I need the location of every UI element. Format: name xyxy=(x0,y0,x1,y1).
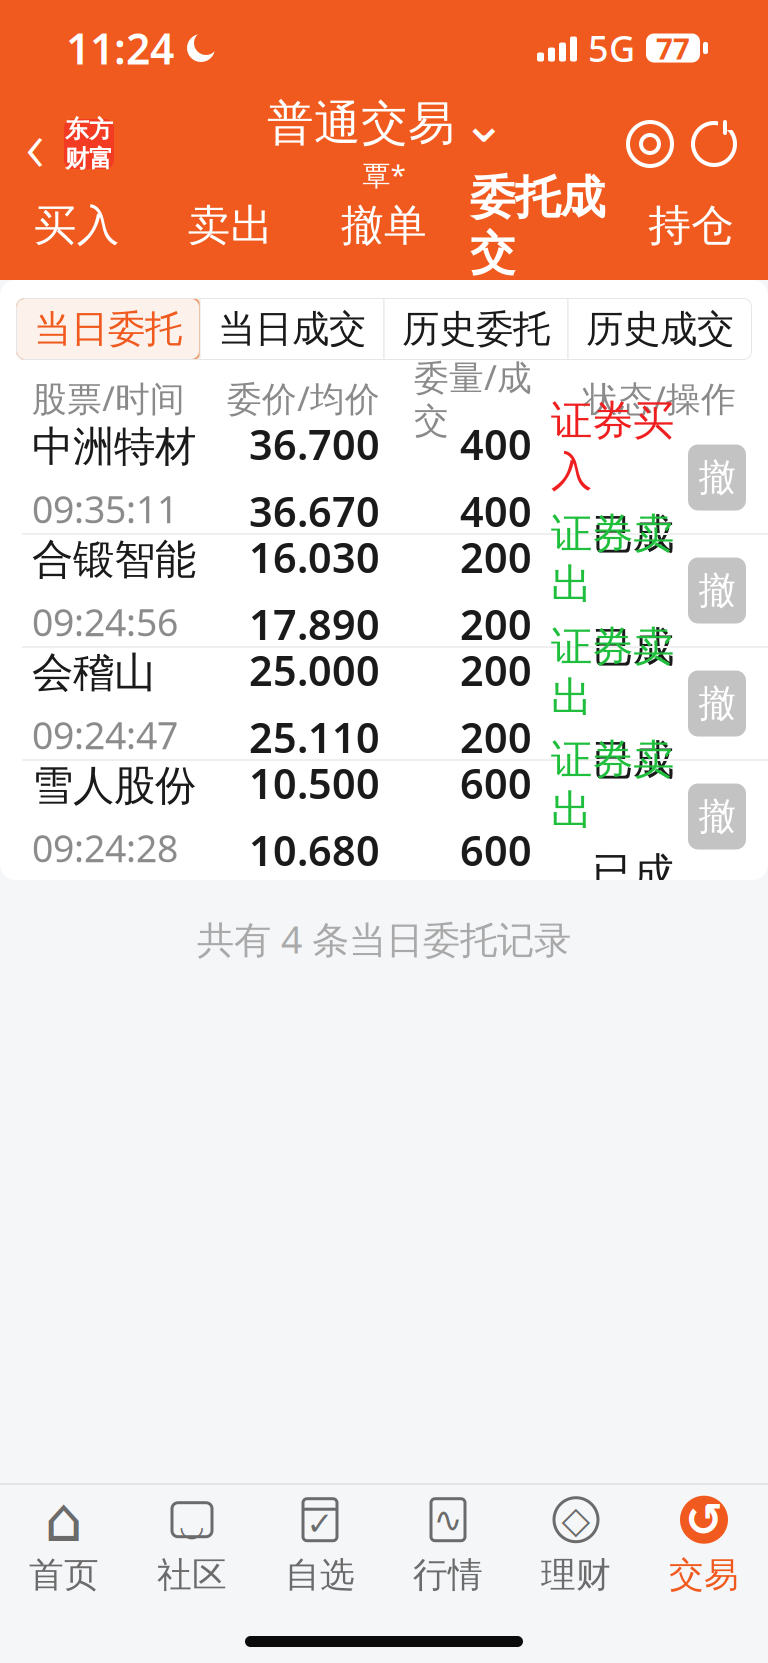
staticText: 卖出 xyxy=(187,199,273,252)
staticText: 200 xyxy=(460,530,532,584)
staticText: 600 xyxy=(460,822,532,877)
staticText: 历史成交 xyxy=(586,306,734,352)
staticText: 撤单 xyxy=(341,199,427,252)
staticText: 买入 xyxy=(34,199,120,252)
staticText: 中洲特材 xyxy=(32,421,196,472)
staticText: 200 xyxy=(460,596,532,651)
staticText: 证券卖出 xyxy=(551,734,674,836)
button[interactable]: 设置 xyxy=(618,112,682,176)
staticText: 10.500 xyxy=(249,756,380,810)
button[interactable]: ∿ xyxy=(384,1485,512,1607)
staticText: 普通交易 xyxy=(267,95,455,152)
staticText: 17.890 xyxy=(249,596,380,651)
staticText: 自选 xyxy=(285,1554,355,1596)
button[interactable]: 会稽山 xyxy=(0,648,768,759)
button[interactable]: 卖出 xyxy=(154,192,307,280)
staticText: 10.680 xyxy=(249,822,380,877)
button[interactable]: 当日委托 xyxy=(16,298,200,360)
staticText: ⌄ xyxy=(461,93,506,154)
staticText: 委托成交 xyxy=(470,170,605,281)
staticText: 委量/成交 xyxy=(414,354,532,442)
button[interactable]: 买入 xyxy=(0,192,154,280)
button[interactable]: 历史成交 xyxy=(568,298,752,360)
staticText: ✓ xyxy=(306,1505,333,1542)
staticText: 行情 xyxy=(413,1554,483,1596)
staticText: 共有 4 条当日委托记录 xyxy=(197,914,571,964)
staticText: 36.670 xyxy=(249,483,380,538)
staticText: 股票/时间 xyxy=(32,375,185,421)
button[interactable]: ⌂ xyxy=(0,1485,128,1607)
staticText: 当日委托 xyxy=(34,306,182,352)
staticText: 200 xyxy=(460,643,532,697)
staticText: 11:24 xyxy=(66,20,174,76)
staticText: 委价/均价 xyxy=(227,375,380,421)
staticText: 09:24:28 xyxy=(32,823,178,873)
staticText: 社区 xyxy=(157,1554,227,1596)
staticText: 撤 xyxy=(698,681,735,726)
staticText: 5G xyxy=(588,24,635,72)
staticText: 东方 xyxy=(65,114,113,144)
staticText: ‹ xyxy=(25,96,44,192)
button[interactable]: ✓ xyxy=(256,1485,384,1607)
button[interactable]: 持仓 xyxy=(614,192,768,280)
staticText: 持仓 xyxy=(648,199,734,252)
staticText: 撤 xyxy=(698,568,735,613)
button[interactable]: 中洲特材 xyxy=(0,422,768,533)
staticText: 会稽山 xyxy=(32,647,155,698)
button[interactable]: 返回 xyxy=(0,111,114,177)
button[interactable]: 刷新 xyxy=(682,112,746,176)
staticText: 理财 xyxy=(541,1554,611,1596)
staticText: 09:24:56 xyxy=(32,597,178,647)
button[interactable]: 当日成交 xyxy=(200,298,384,360)
staticText: ↺ xyxy=(685,1494,723,1545)
staticText: 16.030 xyxy=(249,530,380,584)
staticText: 雪人股份 xyxy=(32,760,196,811)
staticText: 首页 xyxy=(29,1554,99,1596)
staticText: 09:24:47 xyxy=(32,710,178,760)
button[interactable]: ◡ xyxy=(128,1485,256,1607)
staticText: 历史委托 xyxy=(402,306,550,352)
staticText: 已成 xyxy=(592,735,674,786)
staticText: 合锻智能 xyxy=(32,534,196,585)
button[interactable]: 雪人股份 xyxy=(0,761,768,872)
staticText: 证券买入 xyxy=(551,395,674,497)
staticText: 36.700 xyxy=(249,417,380,471)
staticText: 撤 xyxy=(698,455,735,500)
button[interactable]: 委托成交 xyxy=(461,192,614,280)
staticText: 证券卖出 xyxy=(551,621,674,723)
staticText: 已成 xyxy=(592,622,674,673)
staticText: 撤 xyxy=(698,794,735,839)
staticText: ⌂ xyxy=(44,1485,83,1554)
staticText: 财富 xyxy=(65,144,113,173)
staticText: 25.110 xyxy=(249,709,380,764)
staticText: 证券卖出 xyxy=(551,508,674,610)
button[interactable]: ◇ xyxy=(512,1485,640,1607)
staticText: 状态/操作 xyxy=(583,375,736,421)
staticText: 已成 xyxy=(592,848,674,899)
staticText: 200 xyxy=(460,709,532,764)
staticText: 09:35:11 xyxy=(32,484,178,534)
staticText: ◇ xyxy=(561,1498,590,1541)
button[interactable]: 合锻智能 xyxy=(0,535,768,646)
staticText: 交易 xyxy=(669,1554,739,1596)
staticText: 77 xyxy=(656,28,690,67)
staticText: 600 xyxy=(460,756,532,810)
staticText: 已成 xyxy=(592,509,674,560)
staticText: ∿ xyxy=(433,1500,462,1539)
staticText: 25.000 xyxy=(249,643,380,697)
staticText: 400 xyxy=(460,417,532,471)
button[interactable]: ↺ xyxy=(640,1485,768,1607)
staticText: 覃* xyxy=(362,156,405,193)
staticText: 400 xyxy=(460,483,532,538)
button[interactable]: 撤单 xyxy=(307,192,461,280)
button[interactable]: 历史委托 xyxy=(384,298,568,360)
staticText: ◡ xyxy=(179,1509,205,1542)
staticText: 当日成交 xyxy=(218,306,366,352)
